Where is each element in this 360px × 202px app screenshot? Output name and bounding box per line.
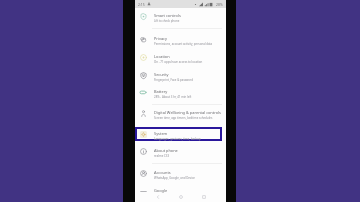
button[interactable]: Smart controls [135,8,226,25]
button[interactable]: Location [135,49,226,66]
staticText: Location [154,54,224,59]
staticText: Smart controls [154,13,224,18]
staticText: System [154,131,224,136]
button[interactable]: Privacy [135,31,226,48]
button[interactable]: Accounts [135,165,226,182]
staticText: 28% - About 3 hr, 41 min left [154,95,225,99]
staticText: About phone [154,148,224,153]
staticText: Accounts [154,170,224,175]
button[interactable]: Home [173,192,189,201]
staticText: Privacy [154,36,224,41]
staticText: Lift to check phone [154,19,225,23]
staticText: 28% [216,2,223,7]
button[interactable]: Google [135,183,226,200]
button[interactable]: Back [150,192,166,201]
button[interactable]: System [135,126,226,143]
staticText: Permissions, account activity, personal … [154,42,225,46]
button[interactable]: Security [135,67,226,84]
button[interactable]: About phone [135,143,226,160]
button[interactable]: Digital Wellbeing & parental controls [135,105,226,122]
staticText: Battery [154,89,224,94]
staticText: Screen time, app timers, bedtime schedul… [154,116,225,120]
staticText: Security [154,72,224,77]
staticText: Languages, gestures, time, backup [154,137,225,141]
button[interactable]: Battery [135,84,226,101]
button[interactable]: Recents [196,192,212,201]
staticText: Digital Wellbeing & parental controls [154,110,224,115]
staticText: WhatsApp, Google, and Device [154,176,225,180]
staticText: realme C33 [154,154,225,158]
staticText: 2:15 [138,2,145,7]
staticText: Services & preferences [154,194,225,198]
staticText: On - 71 apps have access to location [154,60,225,64]
staticText: Fingerprint, Face & password [154,78,225,82]
staticText: Google [154,188,224,193]
